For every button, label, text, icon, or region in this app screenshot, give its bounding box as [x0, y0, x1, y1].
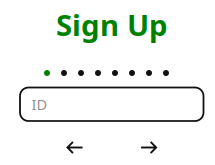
button[interactable]: Back: [57, 132, 93, 162]
staticText: ID: [31, 94, 47, 114]
button[interactable]: ID: [20, 87, 203, 121]
staticText: Sign Up: [56, 5, 168, 44]
button[interactable]: Next: [131, 132, 167, 162]
